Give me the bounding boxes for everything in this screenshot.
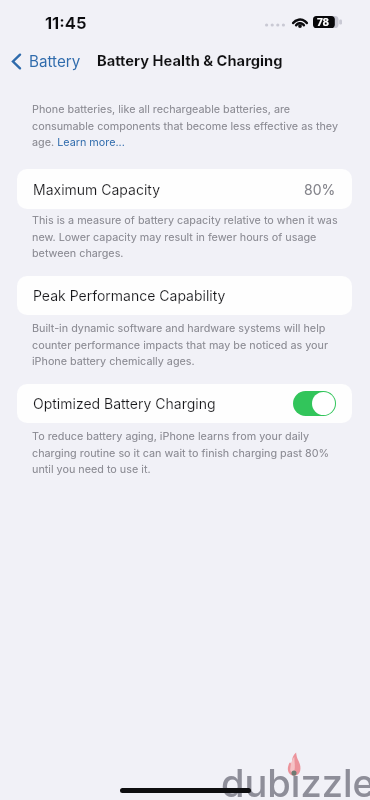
staticText: Optimized Battery Charging — [33, 395, 293, 412]
staticText: 78 — [317, 16, 329, 28]
staticText: Peak Performance Capability — [33, 287, 336, 304]
staticText: Maximum Capacity — [33, 181, 304, 198]
button[interactable]: Optimized Battery Charging — [293, 391, 336, 416]
staticText: Battery Health & Charging — [97, 52, 283, 70]
staticText: To reduce battery aging, iPhone learns f… — [32, 430, 341, 476]
staticText: Built-in dynamic software and hardware s… — [32, 322, 341, 368]
staticText: 80% — [304, 181, 336, 198]
staticText: Battery — [29, 52, 81, 70]
staticText: Phone batteries, like all rechargeable b… — [32, 103, 341, 149]
button[interactable]: Back — [11, 52, 81, 70]
button[interactable]: Maximum Capacity — [17, 169, 352, 209]
staticText: 11:45 — [45, 13, 87, 33]
button[interactable]: Optimized Battery Charging — [17, 384, 352, 423]
staticText: dubizzle — [221, 760, 370, 800]
button[interactable]: Peak Performance Capability — [17, 276, 352, 315]
staticText: This is a measure of battery capacity re… — [32, 214, 341, 260]
other: Back — [11, 53, 22, 70]
